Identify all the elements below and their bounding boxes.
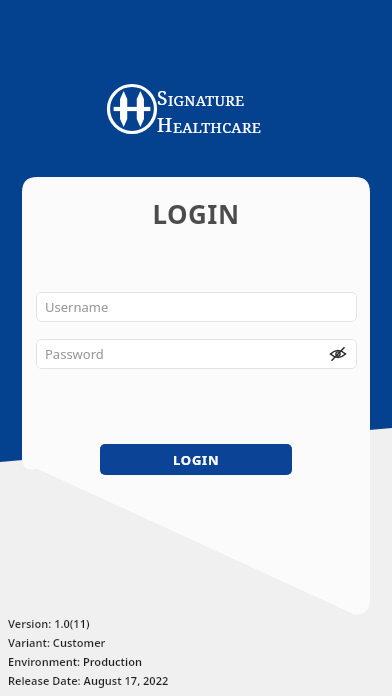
- staticText: LOGIN: [173, 451, 220, 469]
- staticText: LOGIN: [152, 196, 240, 231]
- staticText: Release Date: August 17, 2022: [8, 673, 169, 688]
- staticText: S: [157, 85, 168, 111]
- button[interactable]: LOGIN: [100, 444, 292, 475]
- staticText: Password: [45, 345, 104, 363]
- staticText: Environment: Production: [8, 654, 142, 669]
- staticText: Version: 1.0(11): [8, 616, 90, 631]
- staticText: H: [157, 112, 173, 138]
- staticText: Variant: Customer: [8, 635, 106, 650]
- staticText: EALTHCARE: [173, 117, 262, 137]
- staticText: Username: [45, 298, 109, 316]
- button[interactable]: Username: [36, 292, 357, 322]
- button[interactable]: Password: [36, 339, 357, 369]
- staticText: IGNATURE: [168, 90, 245, 110]
- button[interactable]: Show password: [327, 343, 349, 365]
